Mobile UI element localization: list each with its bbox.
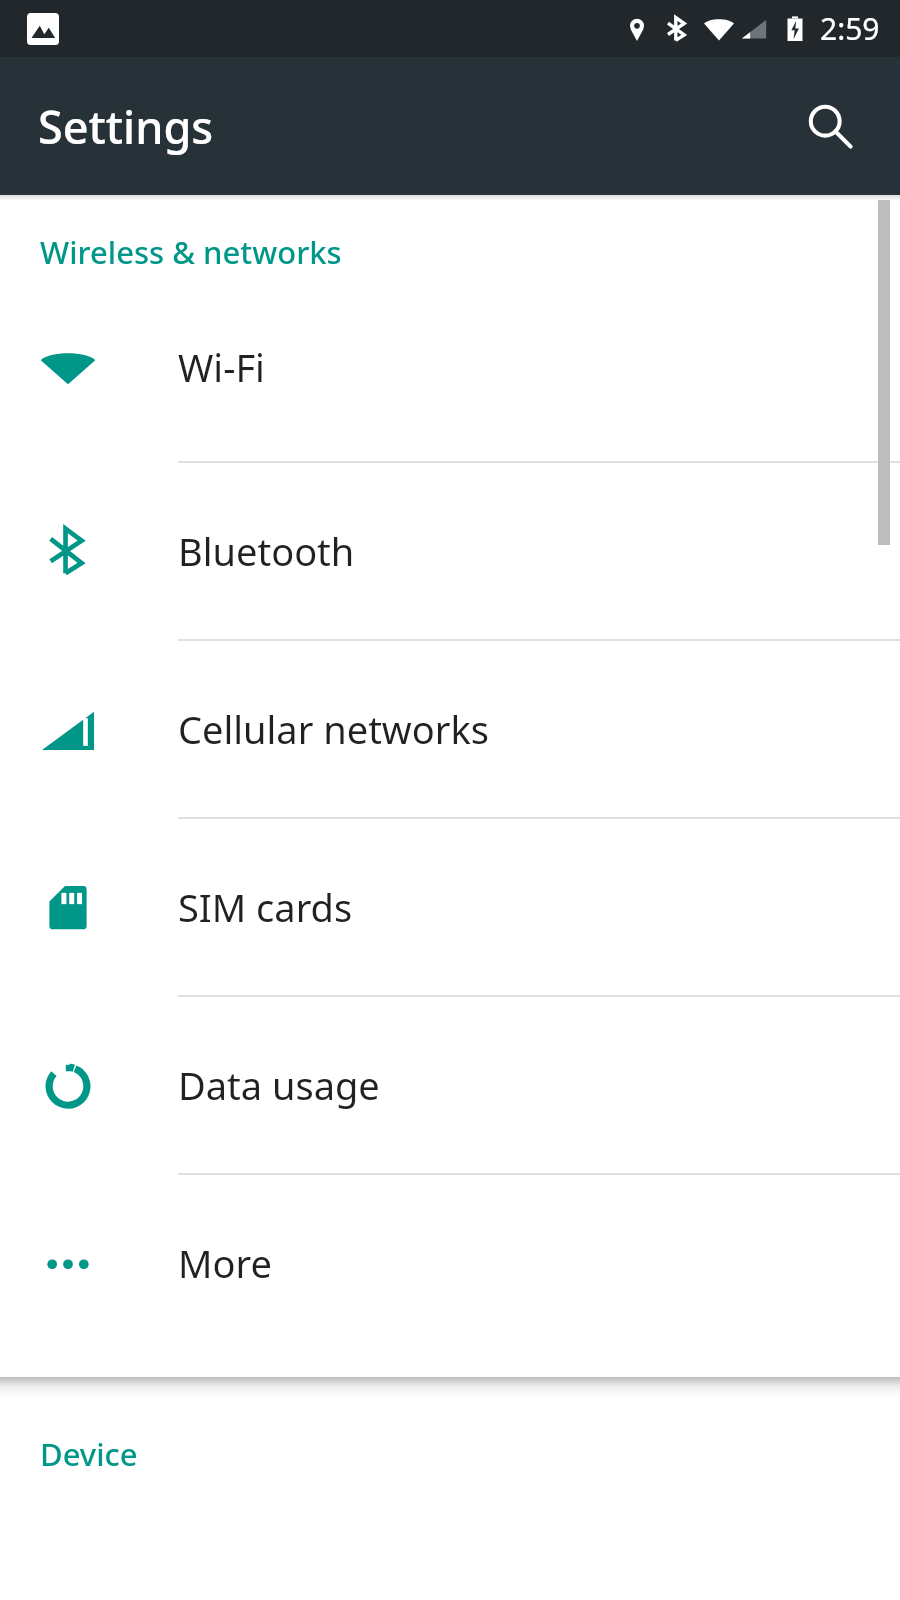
staticText: 2:59 — [820, 8, 880, 49]
button[interactable]: Search — [794, 90, 866, 162]
staticText: Wi-Fi — [178, 341, 265, 393]
staticText: Wireless & networks — [40, 231, 342, 273]
button[interactable]: Cellular networks — [0, 641, 900, 817]
button[interactable]: SIM cards — [0, 819, 900, 995]
button[interactable]: Wi-Fi — [0, 273, 900, 461]
button[interactable]: Bluetooth — [0, 463, 900, 639]
staticText: SIM cards — [178, 881, 353, 933]
staticText: Settings — [38, 96, 214, 157]
staticText: Bluetooth — [178, 525, 355, 577]
staticText: Device — [40, 1433, 138, 1475]
button[interactable]: More — [0, 1175, 900, 1351]
staticText: Data usage — [178, 1059, 380, 1111]
staticText: More — [178, 1237, 272, 1289]
button[interactable]: Data usage — [0, 997, 900, 1173]
staticText: Cellular networks — [178, 703, 489, 755]
